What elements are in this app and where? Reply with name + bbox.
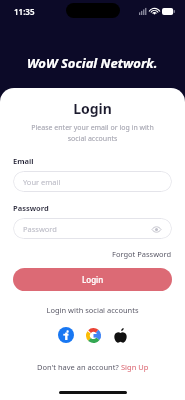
staticText: Login <box>82 274 104 285</box>
staticText: Login <box>13 99 172 118</box>
button[interactable]: Forgot Password <box>112 247 172 261</box>
button[interactable]: Login <box>13 268 172 291</box>
staticText: Login with social accounts <box>13 305 172 315</box>
staticText: 11:35 <box>14 6 35 17</box>
button[interactable]: Login with Apple <box>111 326 129 344</box>
staticText: Don't have an account? <box>37 362 121 372</box>
button[interactable]: Login with Facebook <box>57 326 75 344</box>
button[interactable]: Sign Up <box>121 360 149 374</box>
staticText: Email <box>13 156 34 166</box>
staticText: WoW Social Network. <box>27 54 158 72</box>
staticText: Password <box>13 203 49 213</box>
button[interactable]: Login with Google <box>84 326 102 344</box>
button[interactable]: Show password <box>150 223 162 235</box>
staticText: Please enter your email or log in with s… <box>13 123 172 143</box>
button[interactable]: Your email <box>13 171 172 192</box>
button[interactable]: Password <box>13 218 172 239</box>
staticText: Password <box>23 224 57 234</box>
staticText: Your email <box>23 177 61 187</box>
